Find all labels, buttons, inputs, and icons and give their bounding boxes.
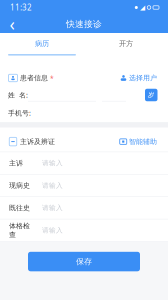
staticText: 11:32 <box>10 2 32 13</box>
staticText: 岁 <box>148 91 155 99</box>
staticText: 快速接诊 <box>66 18 102 30</box>
staticText: ‹ <box>9 12 14 36</box>
staticText: 保存 <box>76 256 92 267</box>
staticText: 姓 名: <box>8 90 28 100</box>
staticText: 手机号: <box>8 108 31 118</box>
staticText: 患者信息 <box>20 74 48 82</box>
staticText: 体格检查 <box>9 222 30 239</box>
staticText: 病历 <box>35 39 49 48</box>
button[interactable]: 返回 <box>2 15 22 33</box>
staticText: 主诉及辨证 <box>20 137 55 146</box>
staticText: ◢ <box>140 4 145 11</box>
staticText: 智能辅助 <box>129 137 157 146</box>
button[interactable]: 选择用户 <box>120 74 157 82</box>
button[interactable]: 智能辅助 <box>119 137 157 146</box>
button[interactable]: 开方 <box>84 33 168 54</box>
staticText: 请输入 <box>42 181 63 190</box>
button[interactable]: 保存 <box>28 252 140 271</box>
staticText: 既往史 <box>9 203 30 212</box>
staticText: 选择用户 <box>129 74 157 82</box>
staticText: * <box>48 73 54 83</box>
staticText: 开方 <box>119 39 133 48</box>
staticText: 现病史 <box>9 181 30 190</box>
staticText: 请输入 <box>42 226 63 234</box>
button[interactable]: 病历 <box>0 33 84 54</box>
staticText: 请输入 <box>42 204 63 212</box>
staticText: 请输入 <box>42 159 63 167</box>
staticText: 主诉 <box>9 159 23 167</box>
